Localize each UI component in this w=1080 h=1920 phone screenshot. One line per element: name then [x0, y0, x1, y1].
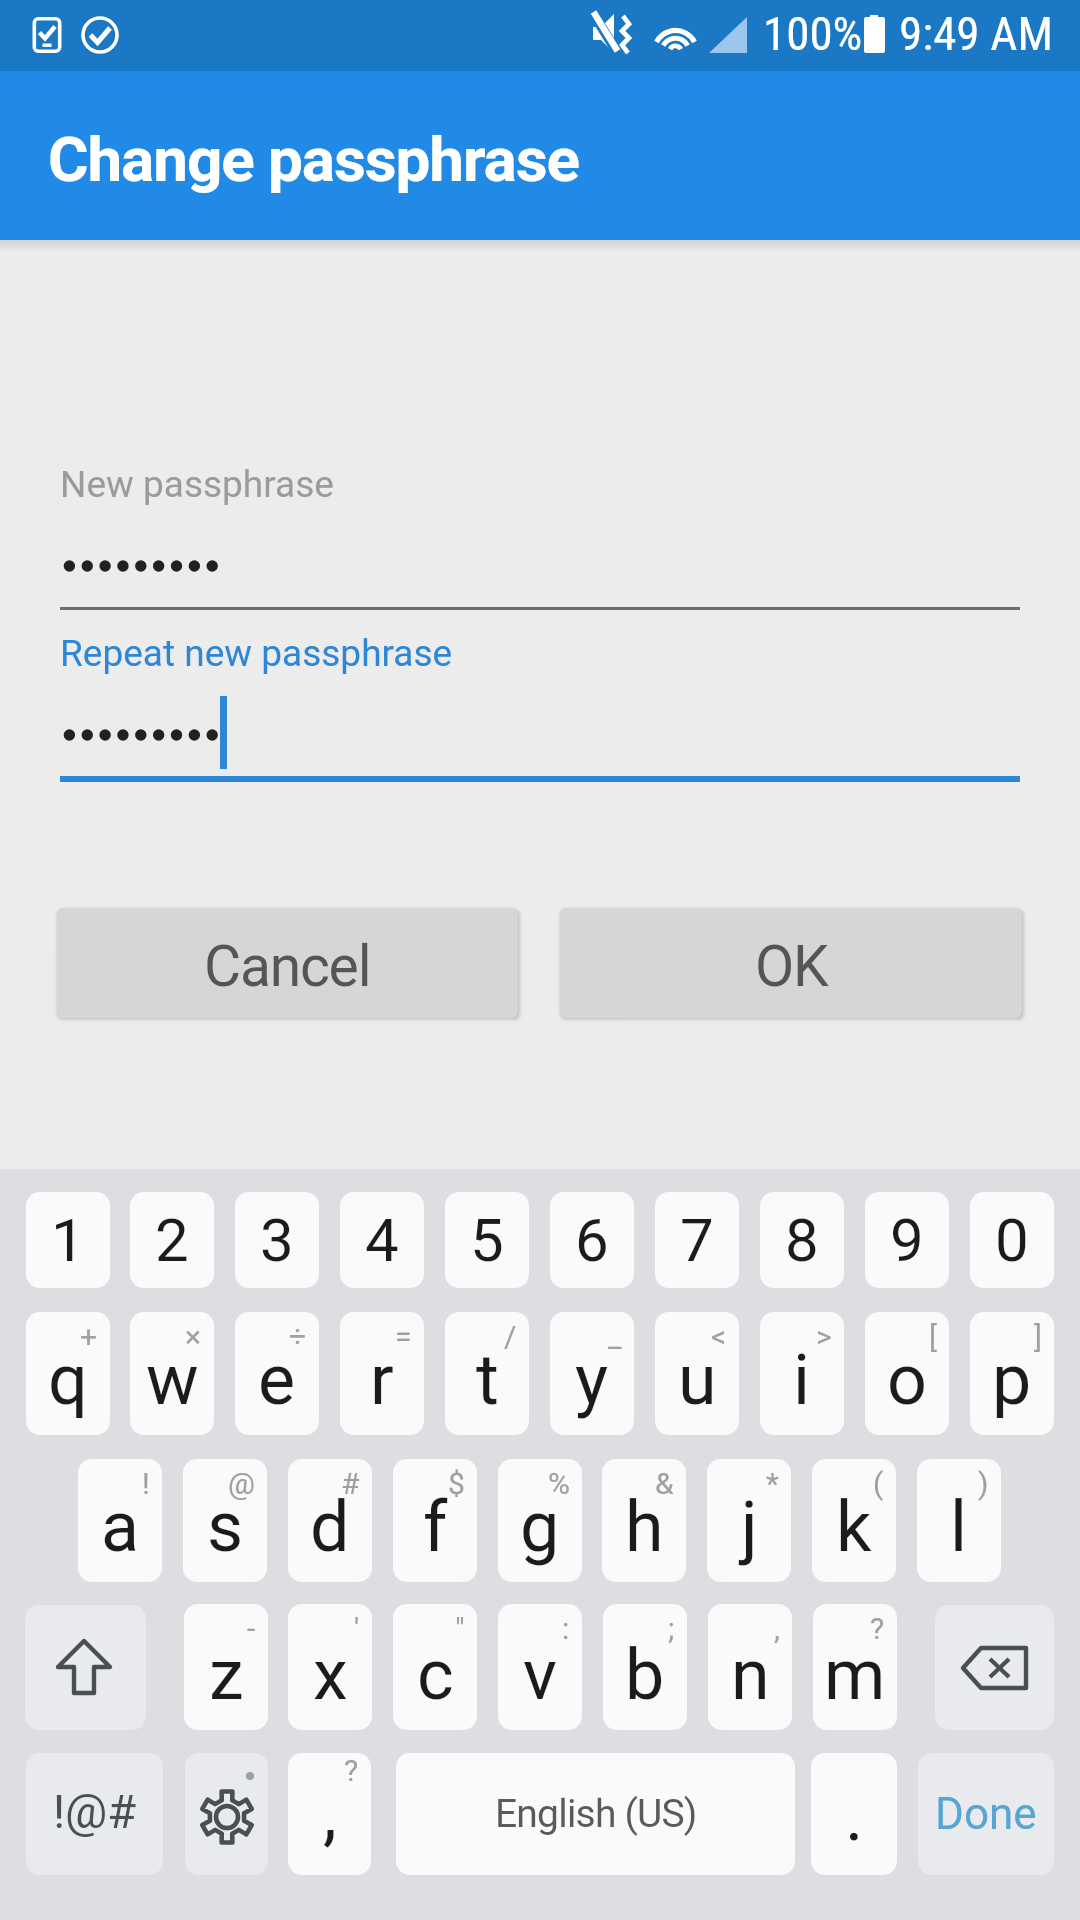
staticText: - — [247, 1611, 256, 1646]
staticText: w — [146, 1339, 199, 1421]
staticText: x — [313, 1634, 348, 1716]
staticText: c — [417, 1634, 454, 1716]
staticText: Cancel — [204, 933, 371, 1000]
button[interactable]: : — [498, 1604, 582, 1730]
staticText: 6 — [575, 1205, 609, 1275]
button[interactable]: + — [26, 1312, 110, 1435]
staticText: d — [310, 1486, 350, 1568]
staticText: Repeat new passphrase — [60, 632, 453, 675]
staticText: , — [774, 1611, 780, 1646]
button[interactable]: ' — [288, 1604, 372, 1730]
button[interactable]: 3 — [235, 1192, 319, 1288]
staticText: j — [741, 1486, 758, 1568]
staticText: : — [562, 1611, 570, 1646]
button[interactable]: !@# — [26, 1753, 163, 1875]
button[interactable]: = — [340, 1312, 424, 1435]
button[interactable]: 4 — [340, 1192, 424, 1288]
button[interactable]: 5 — [445, 1192, 529, 1288]
button[interactable]: _ — [550, 1312, 634, 1435]
staticText: 4 — [365, 1205, 399, 1275]
staticText: # — [341, 1466, 360, 1501]
staticText: t — [476, 1339, 499, 1421]
button[interactable]: , — [708, 1604, 792, 1730]
button[interactable]: ! — [78, 1459, 162, 1582]
button[interactable]: OK — [560, 908, 1022, 1018]
staticText: " — [455, 1611, 465, 1646]
button[interactable]: ÷ — [235, 1312, 319, 1435]
staticText: 8 — [785, 1205, 819, 1275]
staticText: / — [504, 1319, 517, 1354]
staticText: . — [845, 1775, 864, 1857]
button[interactable]: $ — [393, 1459, 477, 1582]
staticText: s — [207, 1486, 244, 1568]
button[interactable]: 0 — [970, 1192, 1054, 1288]
button[interactable]: × — [130, 1312, 214, 1435]
staticText: !@# — [53, 1784, 137, 1839]
staticText: y — [575, 1339, 609, 1421]
staticText: , — [323, 1773, 337, 1855]
button[interactable]: Done — [918, 1753, 1054, 1875]
staticText: Change passphrase — [48, 123, 579, 196]
staticText: ( — [873, 1466, 884, 1501]
button[interactable]: 8 — [760, 1192, 844, 1288]
staticText: Done — [935, 1788, 1037, 1840]
staticText: New passphrase — [60, 463, 334, 506]
staticText: a — [101, 1486, 140, 1568]
button[interactable]: % — [498, 1459, 582, 1582]
staticText: & — [655, 1466, 674, 1501]
staticText: 0 — [995, 1205, 1029, 1275]
staticText: 5 — [470, 1205, 504, 1275]
staticText: 9:49 AM — [899, 6, 1053, 61]
staticText: e — [258, 1339, 296, 1421]
button[interactable]: " — [393, 1604, 477, 1730]
button[interactable]: ? — [288, 1753, 371, 1875]
staticText: o — [887, 1339, 927, 1421]
button[interactable]: Shift — [25, 1605, 146, 1730]
button[interactable]: # — [288, 1459, 372, 1582]
staticText: b — [625, 1634, 665, 1716]
button[interactable]: ? — [813, 1604, 897, 1730]
staticText: $ — [448, 1466, 465, 1501]
button[interactable]: ( — [812, 1459, 896, 1582]
staticText: 2 — [155, 1205, 189, 1275]
staticText: 9 — [890, 1205, 924, 1275]
staticText: l — [950, 1486, 968, 1568]
staticText: f — [423, 1486, 448, 1568]
staticText: 3 — [260, 1205, 294, 1275]
staticText: ? — [870, 1611, 885, 1646]
staticText: m — [824, 1634, 886, 1716]
button[interactable]: ) — [917, 1459, 1001, 1582]
staticText: k — [836, 1486, 872, 1568]
button[interactable]: ; — [603, 1604, 687, 1730]
button[interactable]: 7 — [655, 1192, 739, 1288]
button[interactable]: < — [655, 1312, 739, 1435]
button[interactable]: @ — [183, 1459, 267, 1582]
button[interactable]: / — [445, 1312, 529, 1435]
staticText: v — [523, 1634, 557, 1716]
staticText: 100% — [763, 6, 863, 61]
button[interactable]: > — [760, 1312, 844, 1435]
staticText: ] — [1034, 1319, 1042, 1354]
button[interactable]: * — [707, 1459, 791, 1582]
button[interactable]: 9 — [865, 1192, 949, 1288]
button[interactable]: English (US) — [396, 1753, 795, 1875]
staticText: OK — [755, 933, 828, 1000]
staticText: z — [209, 1634, 244, 1716]
button[interactable]: 1 — [26, 1192, 110, 1288]
staticText: i — [793, 1339, 811, 1421]
button[interactable]: ] — [970, 1312, 1054, 1435]
staticText: n — [731, 1634, 770, 1716]
button[interactable]: Backspace — [935, 1605, 1054, 1730]
button[interactable]: Settings — [185, 1753, 268, 1875]
staticText: * — [766, 1466, 779, 1501]
button[interactable]: Cancel — [57, 908, 518, 1018]
staticText: > — [816, 1319, 832, 1354]
button[interactable]: [ — [865, 1312, 949, 1435]
button[interactable]: 6 — [550, 1192, 634, 1288]
button[interactable]: & — [602, 1459, 686, 1582]
button[interactable]: . — [811, 1753, 897, 1875]
staticText: @ — [228, 1466, 255, 1501]
button[interactable]: - — [184, 1604, 268, 1730]
button[interactable]: 2 — [130, 1192, 214, 1288]
staticText: < — [711, 1319, 727, 1354]
